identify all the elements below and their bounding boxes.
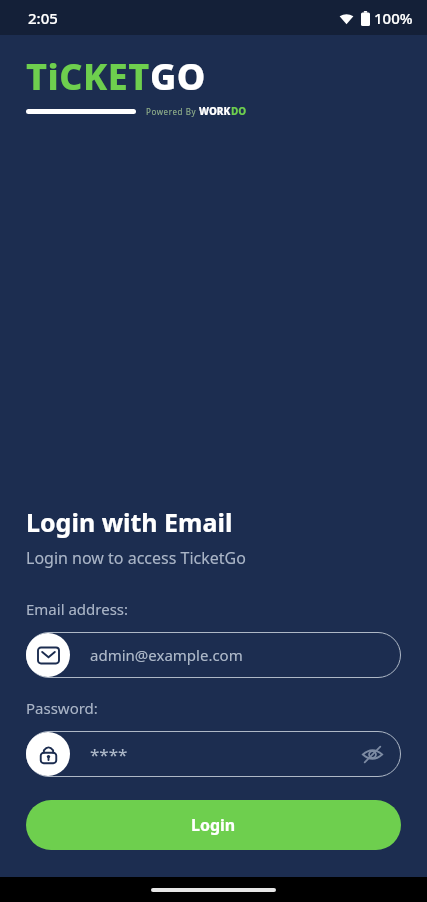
staticText: Email address:: [26, 599, 129, 619]
staticText: admin@example.com: [90, 645, 243, 665]
button[interactable]: admin@example.com: [26, 629, 401, 681]
staticText: 100%: [374, 8, 413, 28]
button[interactable]: Show password: [359, 741, 385, 767]
staticText: WORK: [199, 104, 231, 118]
staticText: Password:: [26, 698, 98, 718]
staticText: Login: [191, 814, 236, 836]
staticText: 2:05: [28, 8, 58, 28]
staticText: Login now to access TicketGo: [26, 547, 246, 569]
staticText: Powered By: [146, 106, 199, 117]
button[interactable]: ****: [26, 728, 401, 780]
button[interactable]: Login: [26, 800, 401, 850]
staticText: DO: [231, 104, 247, 118]
staticText: GO: [150, 52, 206, 101]
staticText: TiCKET: [26, 52, 150, 101]
staticText: Login with Email: [26, 505, 233, 539]
staticText: ****: [90, 743, 128, 766]
